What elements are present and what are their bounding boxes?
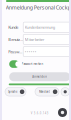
staticText: Mandant [39, 90, 50, 93]
button[interactable]: Passwort merken [9, 60, 19, 68]
staticText: Passwort [8, 49, 23, 54]
staticText: Passwort merken [22, 62, 44, 66]
staticText: Anmelden [32, 75, 47, 78]
button[interactable]: Hilfe [58, 108, 67, 117]
button[interactable]: Sprache [5, 87, 26, 96]
staticText: Mitarbeiter [25, 37, 45, 42]
staticText: Anmeldung Personal Cockpit [6, 4, 71, 11]
staticText: Sprache [8, 90, 18, 93]
button[interactable]: Einstellungen [61, 88, 69, 96]
button[interactable]: Anmelden [9, 72, 70, 81]
staticText: •••••• [25, 49, 37, 54]
staticText: Kundenbenennung [25, 24, 55, 30]
staticText: Kunde [8, 24, 18, 30]
button[interactable]: Mandant [35, 87, 59, 96]
staticText: V 3.6.0.143 [31, 111, 49, 115]
staticText: Benutzer [8, 37, 23, 42]
